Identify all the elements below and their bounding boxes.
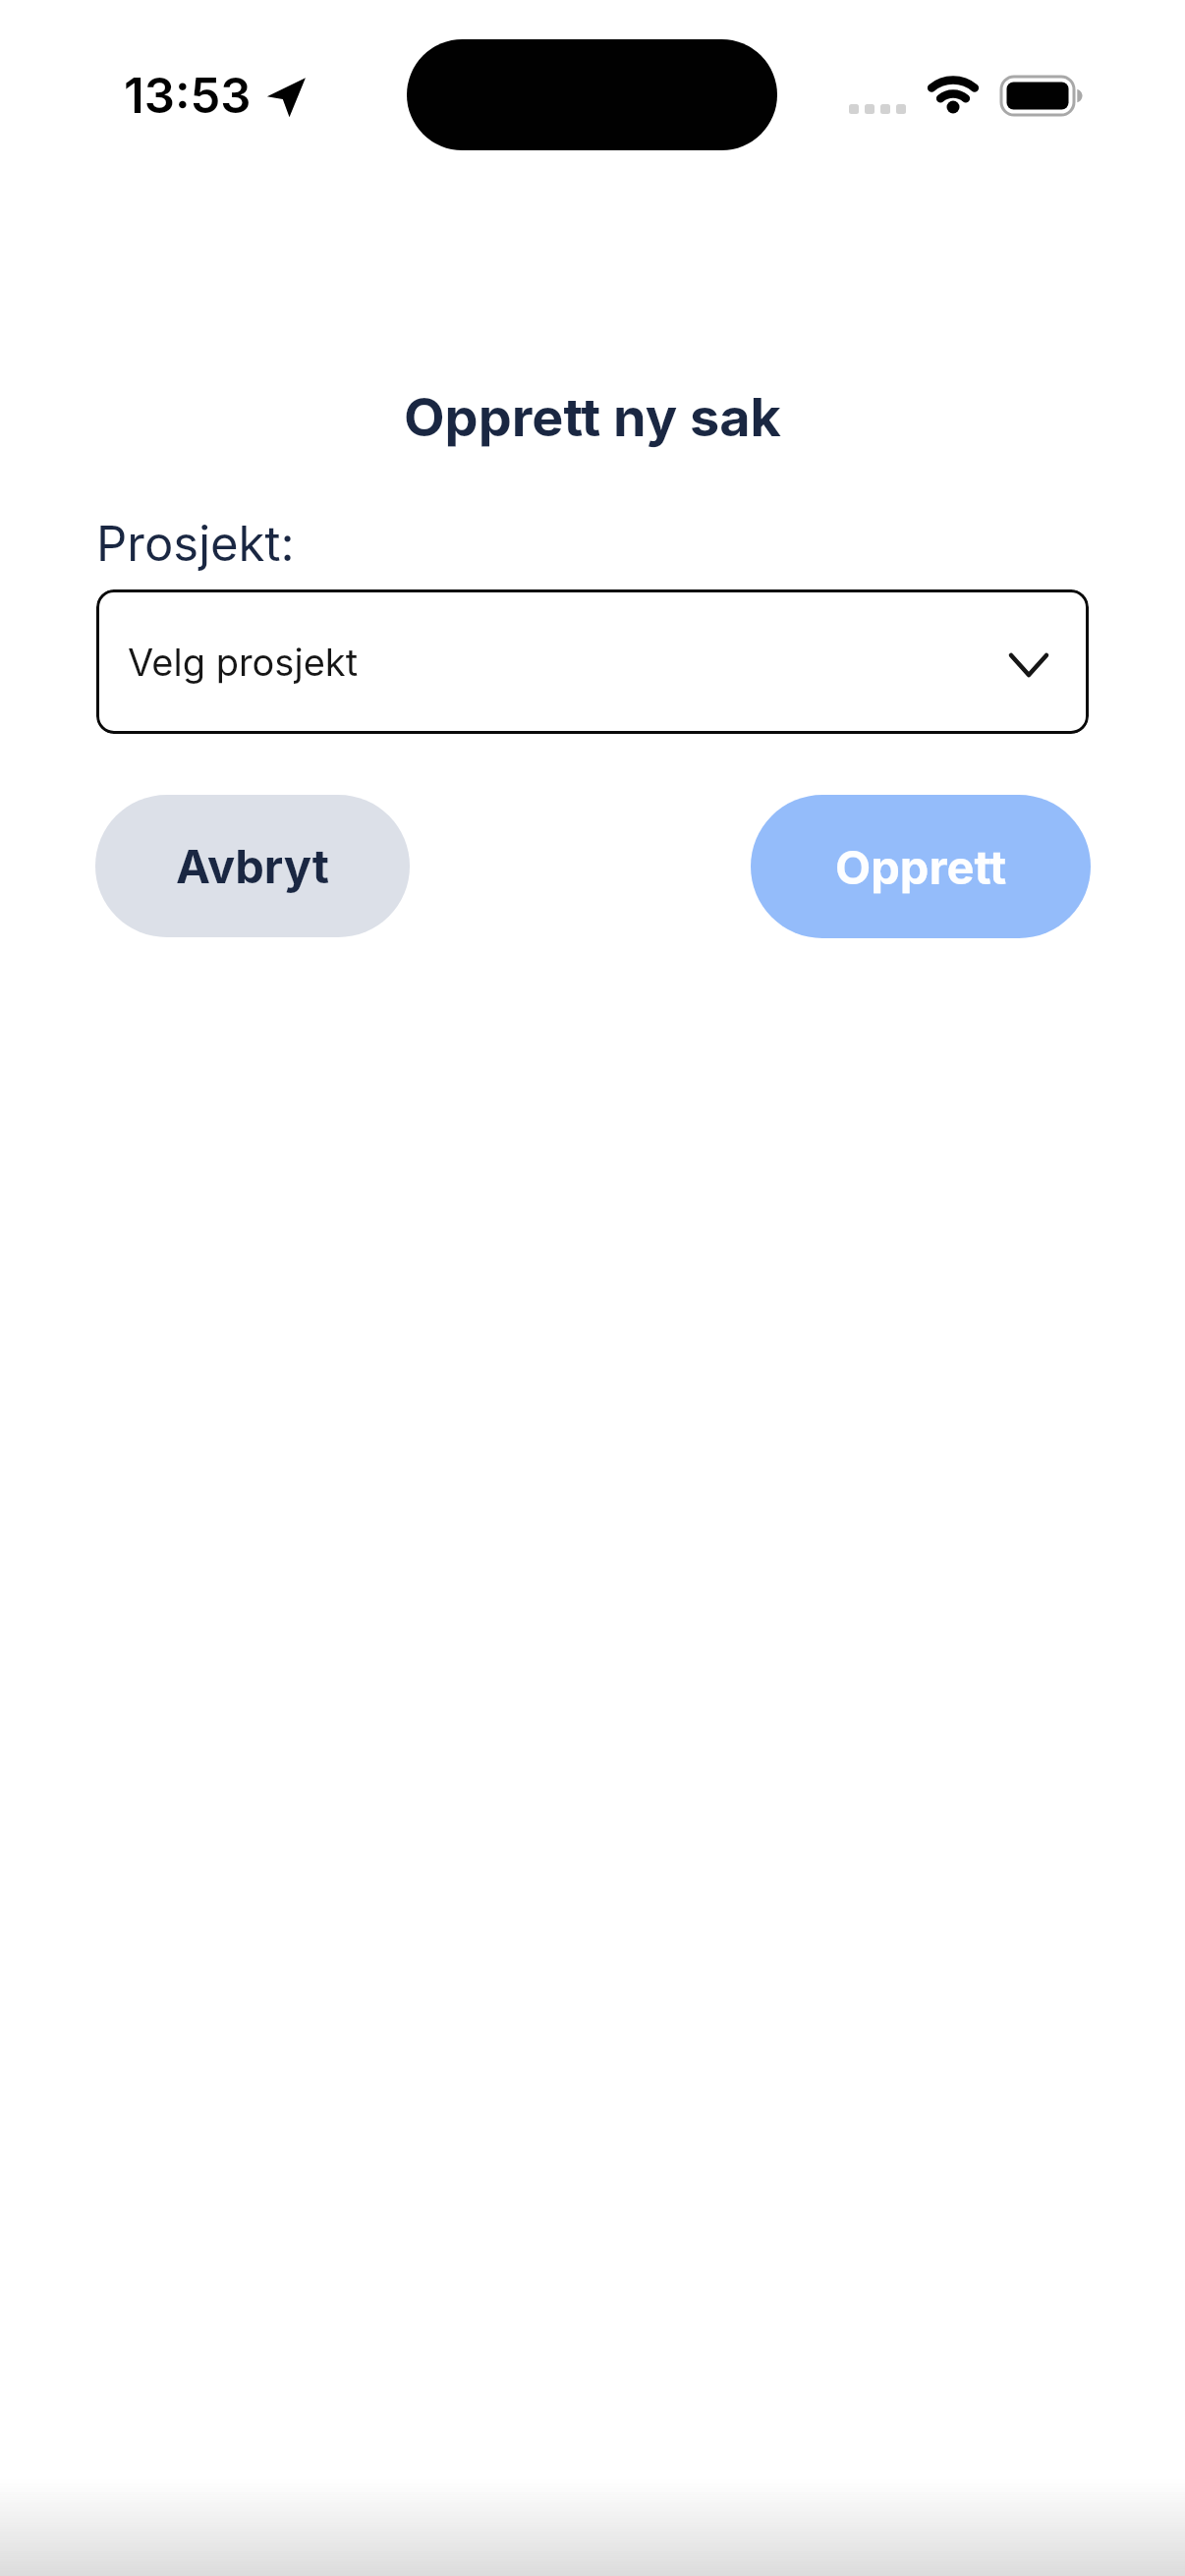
staticText: Velg prosjekt bbox=[128, 640, 359, 685]
button[interactable]: Velg prosjekt bbox=[96, 589, 1089, 734]
staticText: Opprett ny sak bbox=[404, 385, 781, 449]
button[interactable]: Opprett bbox=[751, 795, 1091, 938]
button[interactable]: Avbryt bbox=[95, 795, 410, 937]
staticText: Avbryt bbox=[176, 838, 330, 894]
staticText: Opprett bbox=[835, 839, 1007, 895]
staticText: 13:53 bbox=[124, 67, 252, 125]
staticText: Prosjekt: bbox=[96, 515, 295, 573]
